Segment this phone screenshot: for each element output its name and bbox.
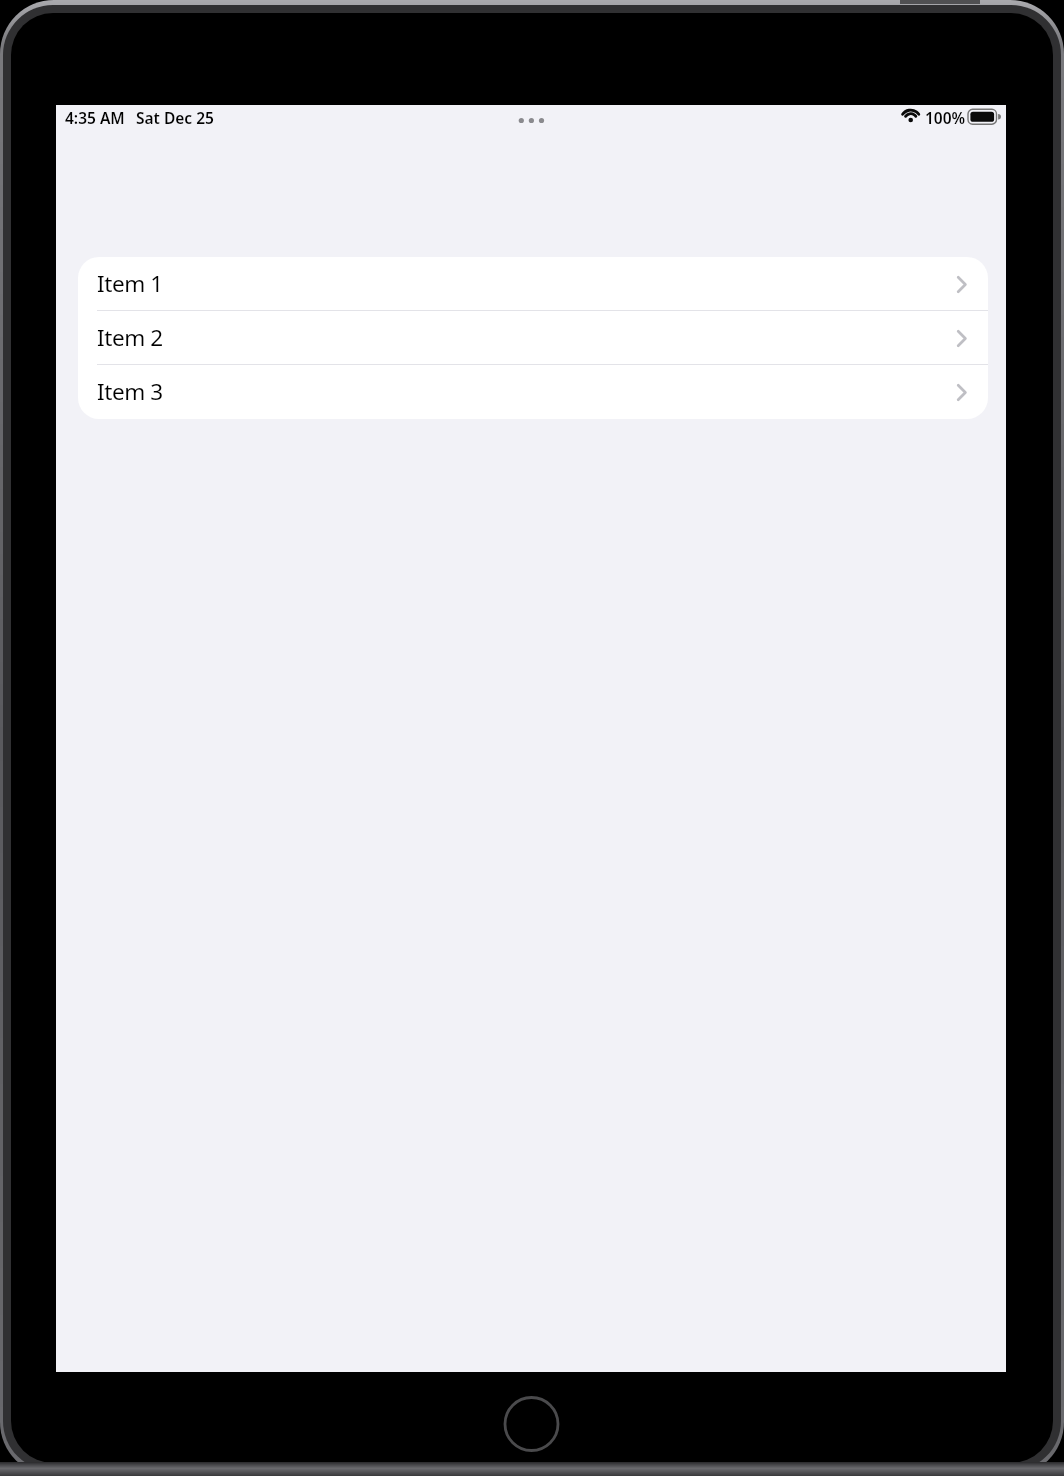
staticText: Sat Dec 25 [136,107,214,128]
staticText: Item 1 [97,268,163,299]
staticText: Item 3 [97,376,163,407]
staticText: 4:35 AM [65,107,125,128]
button[interactable]: Item 1 [78,257,988,311]
button[interactable]: Item 2 [78,311,988,365]
staticText: 100% [925,107,966,128]
button[interactable]: Item 3 [78,365,988,419]
staticText: Item 2 [97,322,163,353]
